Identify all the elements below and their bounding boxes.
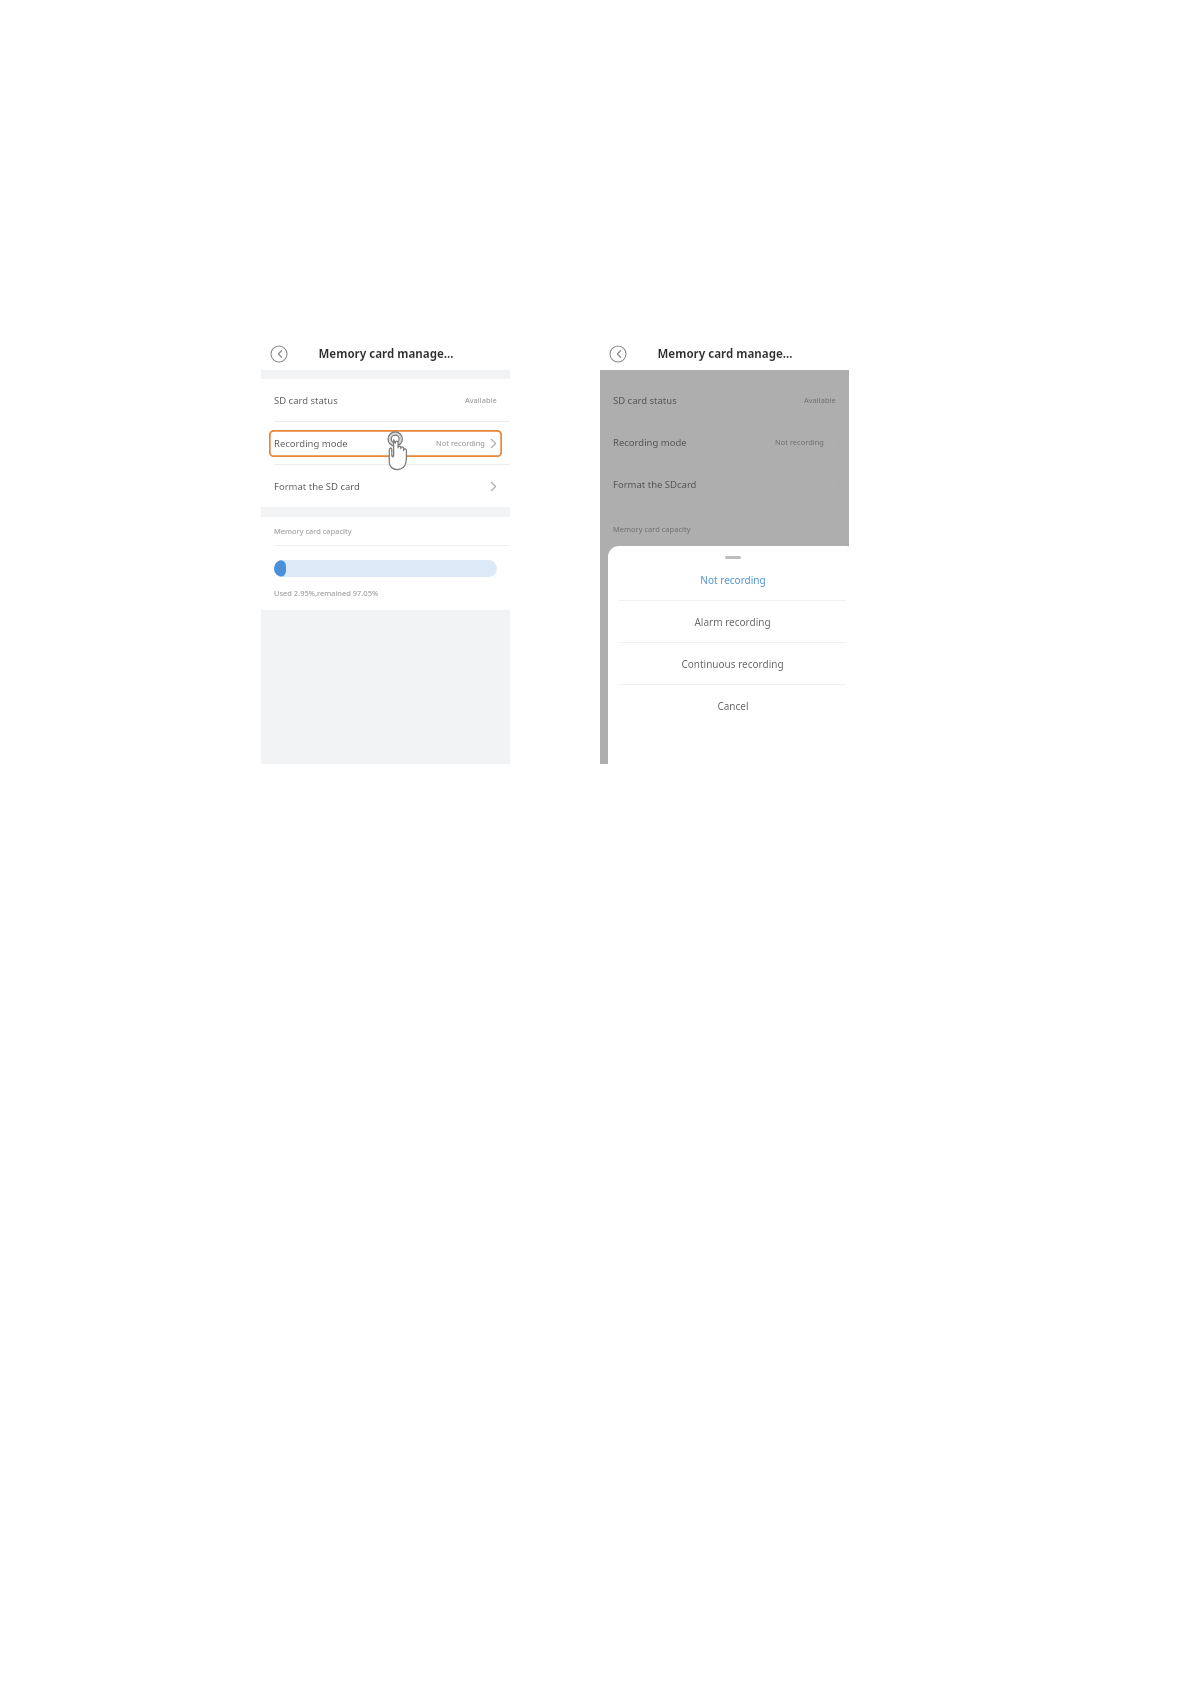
button[interactable]: Continuous recording [608, 643, 857, 684]
staticText: Format the SD card [274, 480, 360, 493]
staticText: Not recording [775, 437, 824, 447]
staticText: Used 2.95%,remained 97.05% [274, 588, 379, 598]
button[interactable]: Format the SDcard [600, 463, 849, 505]
staticText: Available [465, 395, 497, 405]
staticText: Not recording [700, 573, 766, 587]
staticText: Not recording [436, 438, 485, 448]
staticText: SD card status [613, 394, 677, 407]
button[interactable]: Not recording [608, 559, 857, 600]
button[interactable]: Recording mode [261, 422, 510, 464]
staticText: Recording mode [274, 437, 348, 450]
staticText: Alarm recording [694, 615, 771, 629]
button[interactable]: Back [270, 345, 288, 363]
staticText: Format the SDcard [613, 478, 697, 491]
staticText: SD card status [274, 394, 338, 407]
button[interactable]: Back [609, 345, 627, 363]
button[interactable]: Recording mode [600, 421, 849, 463]
staticText: Memory card capacity [613, 524, 691, 534]
button[interactable]: Format the SD card [261, 465, 510, 507]
button[interactable]: SD card status [261, 379, 510, 421]
staticText: Memory card manage... [657, 346, 793, 362]
button[interactable]: Cancel [608, 685, 857, 726]
staticText: Memory card capacity [274, 526, 352, 536]
staticText: Continuous recording [681, 657, 784, 671]
button[interactable]: Alarm recording [608, 601, 857, 642]
staticText: Cancel [717, 699, 749, 713]
button[interactable]: SD card status [600, 379, 849, 421]
staticText: Recording mode [613, 436, 687, 449]
staticText: Memory card manage... [318, 346, 454, 362]
staticText: Available [804, 395, 836, 405]
